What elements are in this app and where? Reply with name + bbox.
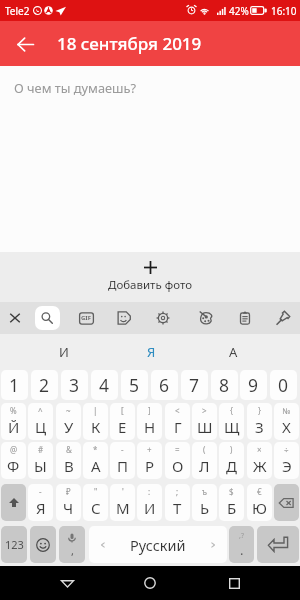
staticText: &: [66, 444, 72, 455]
button[interactable]: Home: [133, 566, 167, 600]
button[interactable]: 6: [151, 370, 178, 400]
button[interactable]: Добавить фото: [0, 252, 300, 302]
button[interactable]: *: [83, 442, 108, 479]
staticText: %: [10, 405, 17, 416]
button[interactable]: €: [247, 484, 272, 521]
staticText: Я: [36, 498, 46, 518]
button[interactable]: -: [28, 484, 53, 521]
button[interactable]: Русский: [89, 526, 227, 563]
button[interactable]: И: [39, 334, 89, 369]
button[interactable]: 123: [1, 526, 27, 563]
button[interactable]: ': [110, 484, 135, 521]
button[interactable]: Enter: [257, 526, 299, 563]
button[interactable]: Stickers: [110, 304, 138, 332]
staticText: 3: [69, 373, 80, 397]
staticText: =: [175, 444, 180, 455]
button[interactable]: ^: [28, 403, 53, 440]
staticText: #: [38, 444, 44, 455]
button[interactable]: Back: [50, 566, 84, 600]
staticText: GIF: [81, 314, 91, 322]
staticText: Tele2: [5, 4, 30, 18]
staticText: |: [93, 405, 98, 416]
button[interactable]: |: [83, 403, 108, 440]
staticText: Ю: [252, 498, 267, 518]
staticText: 42%: [229, 4, 249, 18]
button[interactable]: ): [219, 442, 244, 479]
button[interactable]: ,?: [229, 526, 254, 563]
button[interactable]: 3: [61, 370, 88, 400]
staticText: [: [121, 405, 124, 416]
button[interactable]: Recents: [217, 566, 251, 600]
button[interactable]: ÷: [274, 442, 299, 479]
staticText: ъ: [202, 486, 207, 497]
button[interactable]: 2: [31, 370, 58, 400]
staticText: >: [202, 405, 207, 416]
staticText: О чем ты думаешь?: [14, 79, 137, 96]
button[interactable]: ]: [137, 403, 162, 440]
button[interactable]: GIF: [72, 304, 100, 332]
button[interactable]: ~: [56, 403, 81, 440]
button[interactable]: [: [110, 403, 135, 440]
button[interactable]: А: [208, 334, 258, 369]
button[interactable]: <: [165, 403, 190, 440]
button[interactable]: 0: [270, 370, 297, 400]
button[interactable]: $: [219, 484, 244, 521]
button[interactable]: @: [1, 442, 26, 479]
staticText: ': [122, 486, 124, 497]
button[interactable]: %: [1, 403, 26, 440]
staticText: <: [175, 405, 180, 416]
staticText: 7: [189, 373, 200, 397]
button[interactable]: Back: [7, 26, 43, 62]
button[interactable]: 1: [1, 370, 28, 400]
staticText: ,?: [239, 531, 244, 541]
button[interactable]: ъ: [192, 484, 217, 521]
staticText: Д: [226, 456, 237, 476]
button[interactable]: +: [137, 442, 162, 479]
button[interactable]: Theme: [192, 304, 220, 332]
button[interactable]: :: [137, 484, 162, 521]
staticText: ,: [71, 543, 74, 558]
button[interactable]: Backspace: [274, 484, 299, 521]
button[interactable]: 5: [121, 370, 148, 400]
staticText: 123: [5, 537, 24, 552]
button[interactable]: Settings: [149, 304, 177, 332]
staticText: А: [91, 456, 101, 476]
staticText: *: [93, 444, 98, 455]
button[interactable]: Я: [126, 334, 176, 369]
staticText: +: [147, 444, 152, 455]
button[interactable]: 8: [211, 370, 238, 400]
button[interactable]: >: [192, 403, 217, 440]
button[interactable]: Shift: [1, 484, 26, 521]
button[interactable]: =: [165, 442, 190, 479]
button[interactable]: Close: [1, 304, 29, 332]
staticText: И: [59, 343, 69, 361]
staticText: .: [240, 541, 244, 559]
button[interactable]: Search: [33, 304, 61, 332]
button[interactable]: ₽: [56, 484, 81, 521]
button[interactable]: &: [56, 442, 81, 479]
button[interactable]: Clipboard: [231, 304, 259, 332]
button[interactable]: 7: [181, 370, 208, 400]
button[interactable]: Voice input: [59, 526, 85, 563]
staticText: ": [94, 486, 98, 497]
button[interactable]: 4: [91, 370, 118, 400]
button[interactable]: #: [28, 442, 53, 479]
staticText: Добавить фото: [108, 277, 192, 293]
button[interactable]: ×: [247, 442, 272, 479]
button[interactable]: (: [192, 442, 217, 479]
staticText: -: [39, 486, 42, 497]
button[interactable]: Pin: [269, 304, 297, 332]
staticText: Ж: [253, 456, 267, 476]
button[interactable]: -: [110, 442, 135, 479]
button[interactable]: ;: [165, 484, 190, 521]
button[interactable]: 9: [240, 370, 267, 400]
staticText: 4: [99, 373, 110, 397]
button[interactable]: }: [247, 403, 272, 440]
button[interactable]: {: [219, 403, 244, 440]
button[interactable]: Emoji: [30, 526, 56, 563]
staticText: ÷: [284, 444, 289, 455]
staticText: Н: [144, 417, 156, 437]
button[interactable]: №: [274, 403, 299, 440]
button[interactable]: ": [83, 484, 108, 521]
staticText: 16:10: [271, 4, 297, 18]
